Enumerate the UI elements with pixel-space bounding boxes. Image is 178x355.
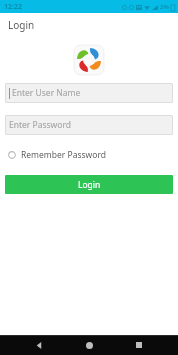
button[interactable]: Back: [28, 335, 50, 355]
button[interactable]: Enter Password: [5, 115, 173, 135]
staticText: 2%: [160, 3, 169, 11]
button[interactable]: Remember Password: [5, 148, 173, 162]
button[interactable]: Home: [78, 335, 100, 355]
button[interactable]: Enter User Name: [5, 83, 173, 103]
staticText: Enter Password: [9, 119, 72, 131]
staticText: Enter User Name: [12, 87, 81, 99]
staticText: Remember Password: [21, 149, 106, 161]
staticText: 12:22: [4, 2, 22, 12]
button[interactable]: Login: [5, 175, 173, 194]
staticText: Login: [78, 179, 101, 191]
button[interactable]: Recent apps: [128, 335, 150, 355]
staticText: Login: [8, 18, 35, 32]
